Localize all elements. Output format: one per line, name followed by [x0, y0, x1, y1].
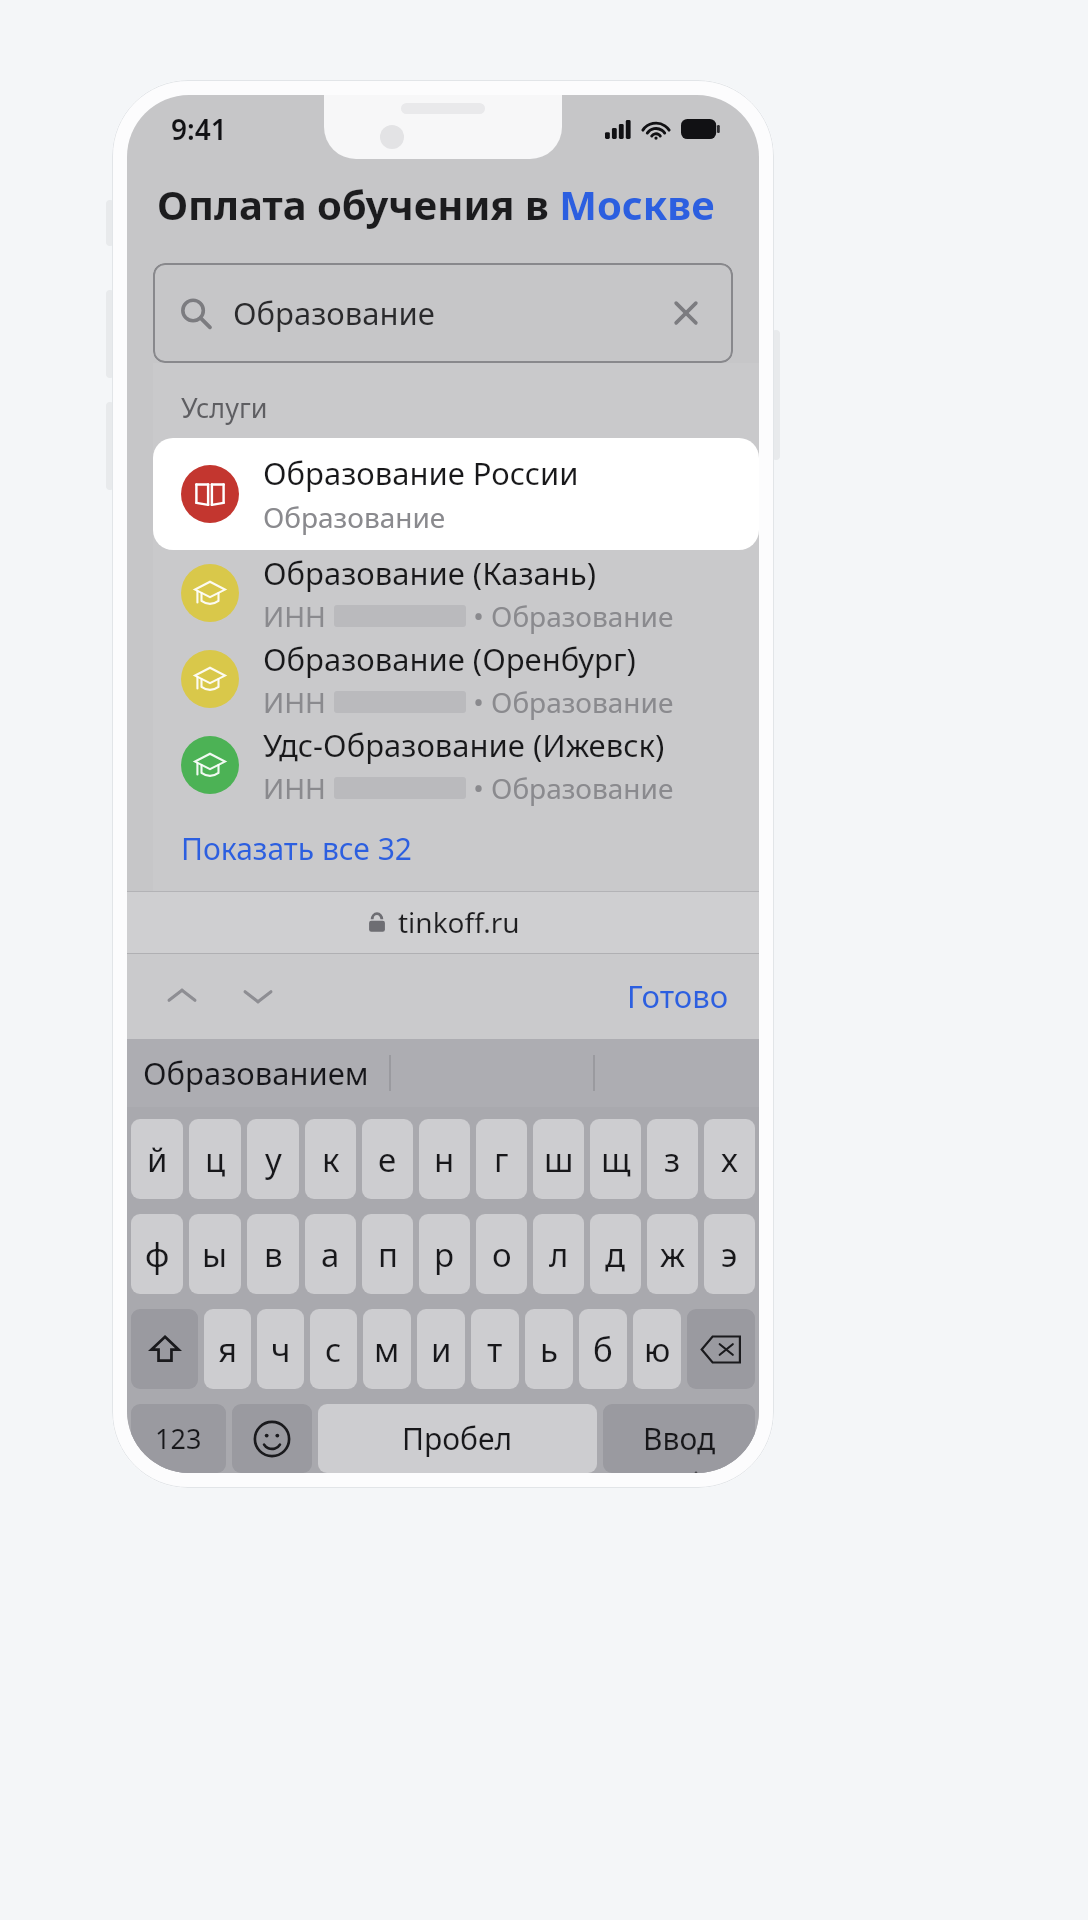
button[interactable]: Образование: [153, 263, 733, 363]
button[interactable]: з: [647, 1119, 698, 1199]
button[interactable]: Показать все 32: [181, 828, 412, 869]
button[interactable]: х: [704, 1119, 755, 1199]
button[interactable]: и: [417, 1309, 465, 1389]
button[interactable]: в: [247, 1214, 299, 1294]
staticText: ИНН: [263, 597, 334, 635]
staticText: ИНН: [263, 683, 334, 721]
staticText: ж: [660, 1232, 686, 1277]
staticText: Образование: [263, 498, 446, 536]
button[interactable]: ю: [633, 1309, 681, 1389]
button[interactable]: Образование (Оренбург): [153, 636, 759, 722]
staticText: х: [721, 1137, 738, 1182]
staticText: э: [721, 1232, 738, 1277]
button[interactable]: Удс-Образование (Ижевск): [153, 722, 759, 808]
button[interactable]: т: [471, 1309, 519, 1389]
button[interactable]: б: [579, 1309, 627, 1389]
staticText: м: [374, 1327, 400, 1372]
button[interactable]: ь: [525, 1309, 573, 1389]
button[interactable]: я: [204, 1309, 251, 1389]
button[interactable]: Образование (Казань): [153, 550, 759, 636]
button[interactable]: н: [419, 1119, 470, 1199]
button[interactable]: р: [419, 1214, 470, 1294]
button[interactable]: ш: [533, 1119, 584, 1199]
button[interactable]: 123: [131, 1404, 226, 1473]
button[interactable]: ц: [189, 1119, 241, 1199]
button[interactable]: щ: [590, 1119, 641, 1199]
button[interactable]: Backspace: [687, 1309, 755, 1389]
staticText: в: [264, 1232, 283, 1277]
staticText: ц: [205, 1137, 226, 1182]
staticText: а: [321, 1232, 340, 1277]
button[interactable]: Shift: [131, 1309, 198, 1389]
staticText: ч: [271, 1327, 291, 1372]
staticText: Образование (Казань): [263, 552, 597, 594]
staticText: з: [664, 1137, 681, 1182]
staticText: tinkoff.ru: [398, 903, 520, 941]
staticText: Образование: [233, 292, 435, 334]
staticText: Услуги: [181, 389, 268, 426]
button[interactable]: Clear search: [665, 292, 707, 334]
button[interactable]: Ввод: [603, 1404, 755, 1473]
staticText: Образование России: [263, 452, 579, 494]
button[interactable]: Пробел: [318, 1404, 597, 1473]
staticText: Ввод: [643, 1418, 716, 1459]
button[interactable]: л: [533, 1214, 584, 1294]
staticText: я: [218, 1327, 238, 1372]
staticText: е: [378, 1137, 397, 1182]
staticText: щ: [601, 1137, 631, 1182]
button[interactable]: Emoji: [232, 1404, 312, 1473]
staticText: р: [434, 1232, 455, 1277]
staticText: Оплата обучения в Москве: [157, 177, 715, 231]
staticText: ю: [644, 1327, 671, 1372]
button[interactable]: у: [247, 1119, 299, 1199]
button[interactable]: г: [476, 1119, 527, 1199]
staticText: Пробел: [402, 1418, 513, 1459]
button[interactable]: Next field: [231, 969, 285, 1023]
button[interactable]: а: [305, 1214, 356, 1294]
button[interactable]: е: [362, 1119, 413, 1199]
staticText: и: [431, 1327, 452, 1372]
staticText: о: [492, 1232, 512, 1277]
staticText: ш: [544, 1137, 574, 1182]
staticText: Образование (Оренбург): [263, 638, 636, 680]
staticText: с: [325, 1327, 342, 1372]
staticText: б: [593, 1327, 613, 1372]
staticText: Удс-Образование (Ижевск): [263, 724, 665, 766]
button[interactable]: Образованием: [143, 1052, 369, 1094]
staticText: 9:41: [171, 110, 227, 148]
staticText: к: [322, 1137, 340, 1182]
staticText: д: [605, 1232, 626, 1277]
button[interactable]: с: [310, 1309, 357, 1389]
button[interactable]: п: [362, 1214, 413, 1294]
staticText: г: [494, 1137, 509, 1182]
button[interactable]: Готово: [627, 975, 729, 1017]
staticText: н: [434, 1137, 455, 1182]
button[interactable]: д: [590, 1214, 641, 1294]
button[interactable]: й: [131, 1119, 183, 1199]
staticText: л: [549, 1232, 569, 1277]
staticText: т: [487, 1327, 503, 1372]
button[interactable]: ч: [257, 1309, 304, 1389]
button[interactable]: э: [704, 1214, 755, 1294]
button[interactable]: ж: [647, 1214, 698, 1294]
staticText: • Образование: [466, 597, 674, 635]
staticText: й: [147, 1137, 168, 1182]
staticText: ИНН: [263, 769, 334, 807]
staticText: 123: [155, 1420, 202, 1457]
button[interactable]: Образование России: [153, 438, 759, 550]
staticText: ф: [145, 1232, 170, 1277]
staticText: ь: [540, 1327, 558, 1372]
staticText: у: [265, 1137, 282, 1182]
staticText: ы: [202, 1232, 228, 1277]
button[interactable]: ы: [189, 1214, 241, 1294]
button[interactable]: Previous field: [155, 969, 209, 1023]
button[interactable]: о: [476, 1214, 527, 1294]
button[interactable]: м: [363, 1309, 411, 1389]
button[interactable]: к: [305, 1119, 356, 1199]
button[interactable]: ф: [131, 1214, 183, 1294]
staticText: • Образование: [466, 683, 674, 721]
staticText: п: [378, 1232, 398, 1277]
staticText: • Образование: [466, 769, 674, 807]
